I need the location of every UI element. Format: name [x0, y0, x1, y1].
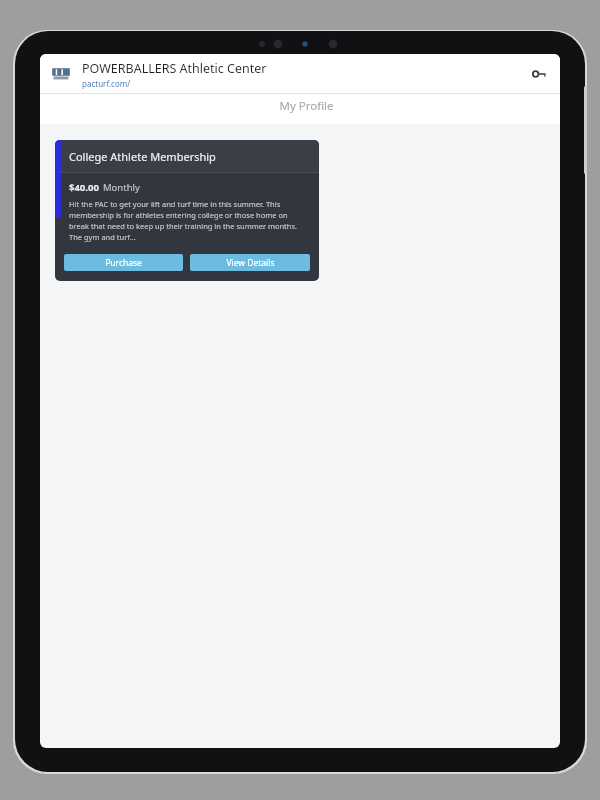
staticText: Hit the PAC to get your lift and turf ti… [69, 199, 309, 242]
button[interactable]: Purchase [64, 254, 183, 271]
button[interactable]: My Profile [53, 94, 560, 124]
button[interactable]: View Details [190, 254, 310, 271]
button[interactable]: Site permissions [526, 61, 552, 87]
staticText: My Profile [279, 98, 334, 114]
staticText: Purchase [105, 257, 142, 269]
staticText: Monthly [103, 181, 140, 194]
staticText: College Athlete Membership [69, 149, 216, 164]
staticText: View Details [226, 257, 275, 269]
staticText: $40.00 [69, 181, 99, 194]
staticText: pacturf.com/ [82, 78, 131, 89]
staticText: POWERBALLERS Athletic Center [82, 60, 267, 77]
